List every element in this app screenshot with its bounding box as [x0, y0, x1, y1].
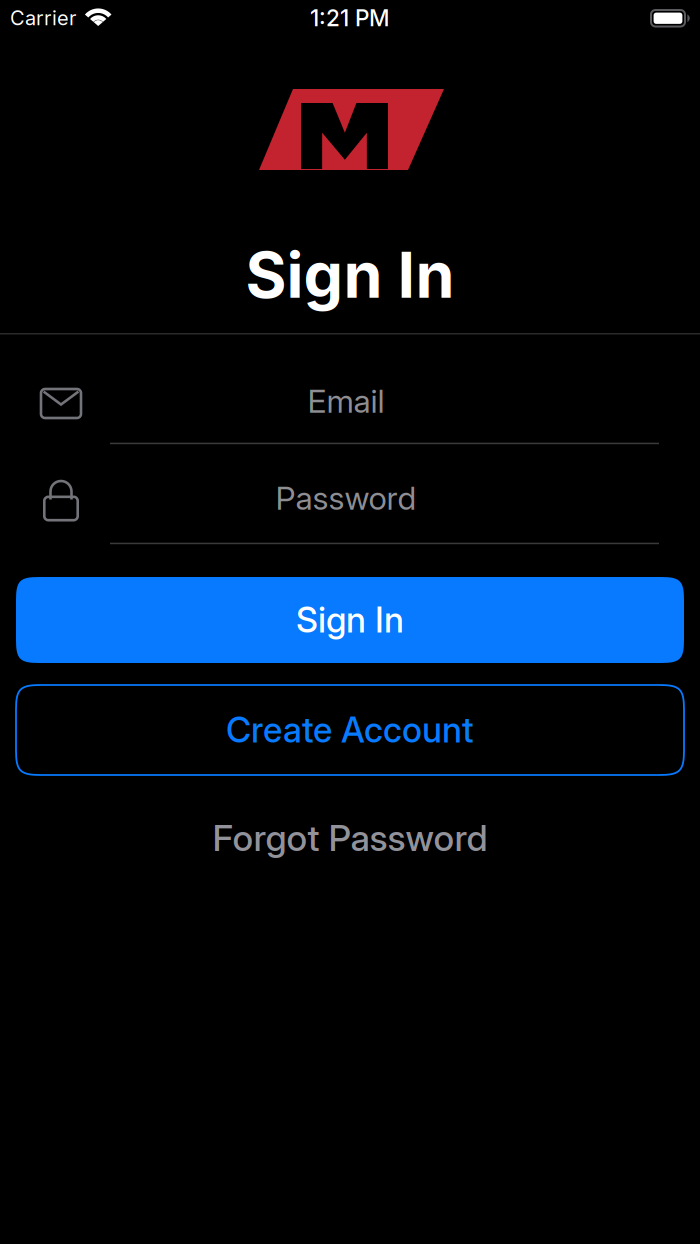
staticText: Carrier — [10, 6, 76, 30]
staticText: Sign In — [296, 600, 404, 640]
staticText: Create Account — [226, 710, 474, 750]
button[interactable]: Create Account — [16, 685, 684, 775]
staticText: 1:21 PM — [310, 5, 390, 31]
staticText: Forgot Password — [212, 817, 487, 859]
button[interactable]: Forgot Password — [0, 818, 700, 858]
button[interactable]: Email — [0, 380, 692, 420]
staticText: Email — [307, 382, 384, 420]
button[interactable]: Sign In — [16, 577, 684, 663]
staticText: Password — [275, 479, 416, 517]
staticText: Sign In — [245, 238, 454, 312]
button[interactable]: Password — [0, 477, 692, 519]
